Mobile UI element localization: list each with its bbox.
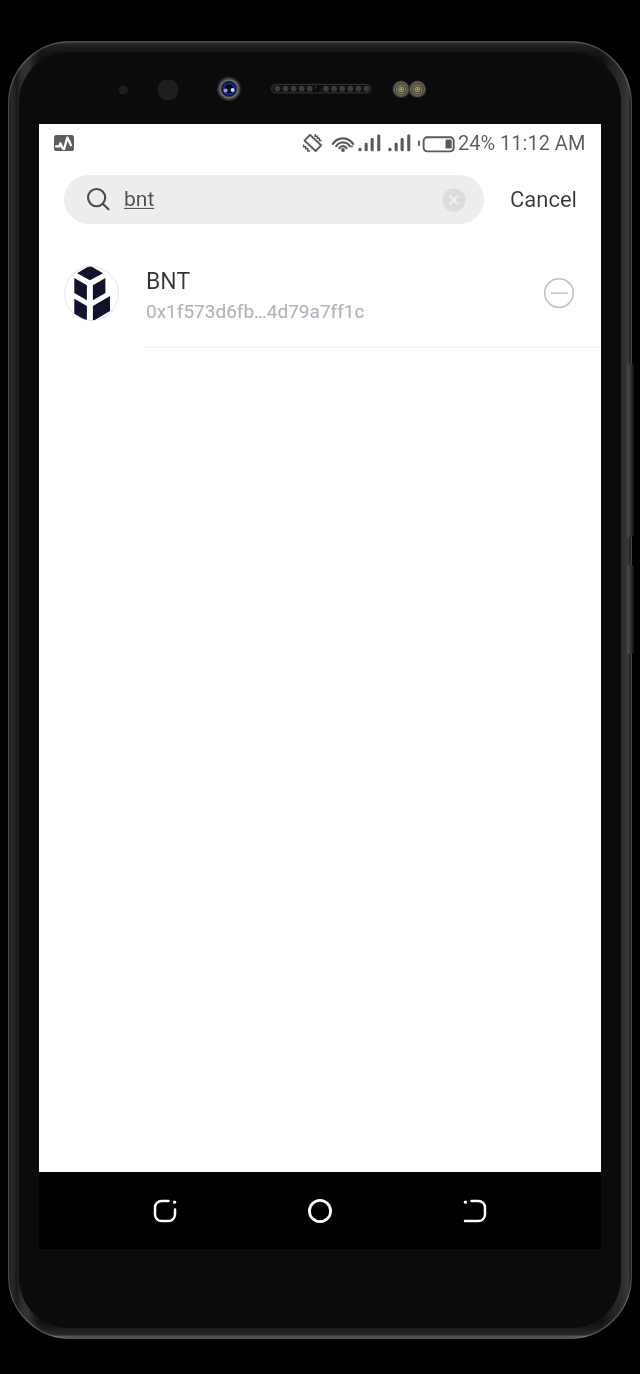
staticText: BNT [146,268,191,295]
button[interactable]: bnt [64,175,484,224]
button[interactable]: Home [284,1172,356,1249]
staticText: 0x1f573d6fb…4d79a7ff1c [146,300,365,322]
button[interactable]: Remove token [533,267,585,319]
staticText: 24% 11:12 AM [458,131,586,154]
button[interactable]: Back [439,1172,511,1249]
button[interactable]: Cancel [496,175,591,224]
button[interactable]: BNT [39,231,601,347]
button[interactable]: Clear search [431,177,476,222]
staticText: bnt [124,187,155,212]
button[interactable]: Recents [129,1172,201,1249]
staticText: Cancel [510,187,577,213]
